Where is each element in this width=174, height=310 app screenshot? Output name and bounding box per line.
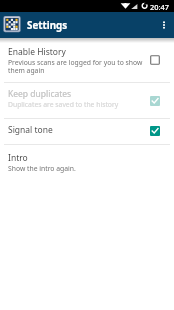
button[interactable]: More options (154, 15, 174, 35)
staticText: Signal tone (8, 124, 53, 136)
staticText: Show the intro again. (8, 164, 76, 173)
staticText: Keep duplicates (8, 88, 72, 100)
staticText: Enable History (8, 46, 66, 58)
staticText: Intro (8, 152, 28, 164)
button[interactable]: Enable History (0, 38, 174, 82)
staticText: Previous scans are logged for you to sho… (8, 58, 154, 75)
button[interactable]: Signal tone (0, 119, 174, 144)
button[interactable]: Keep duplicates (0, 83, 174, 118)
staticText: 20:47 (150, 2, 169, 12)
staticText: Settings (27, 19, 68, 32)
button[interactable]: Barcode Scanner (3, 15, 21, 33)
button[interactable]: Intro (0, 145, 174, 181)
staticText: Duplicates are saved to the history (8, 100, 119, 109)
